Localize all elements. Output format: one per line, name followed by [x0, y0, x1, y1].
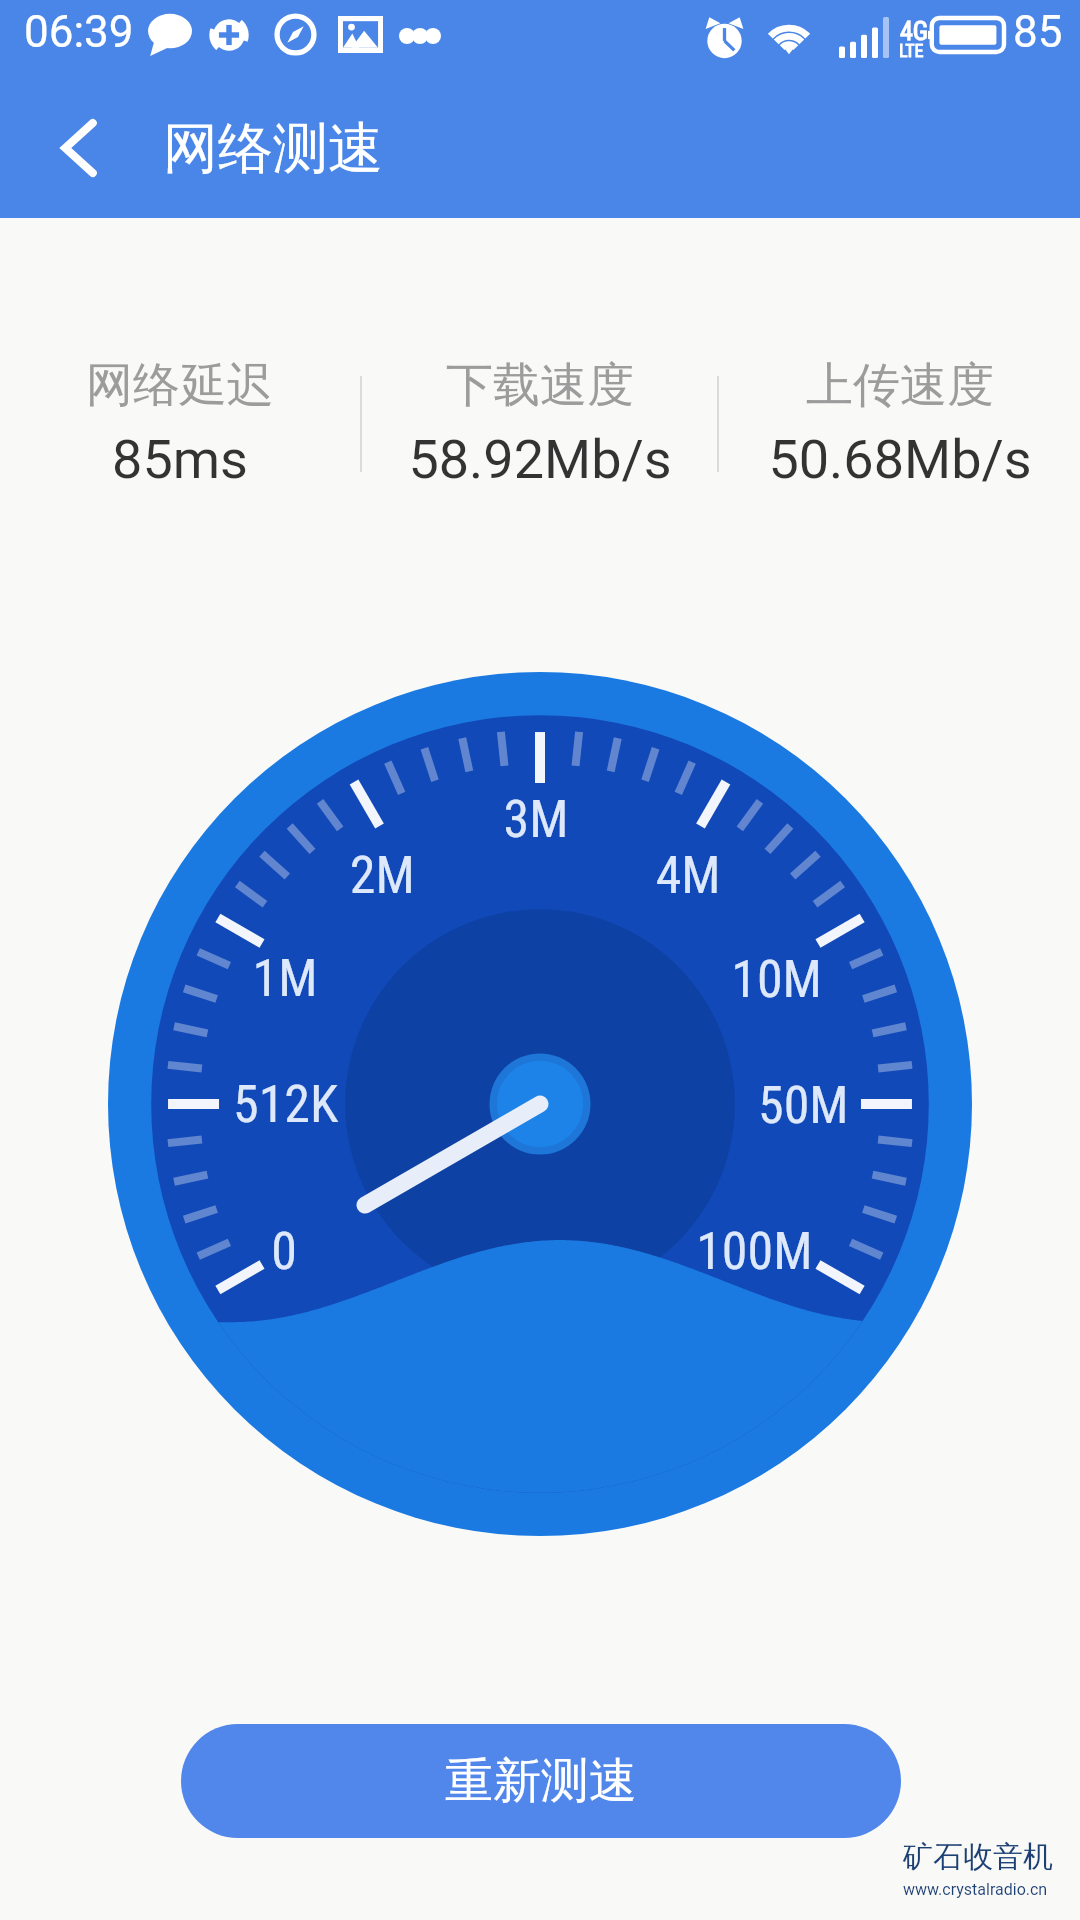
staticText: 06:39: [24, 6, 134, 58]
button[interactable]: 重新测速: [181, 1724, 901, 1838]
staticText: 58.92Mb/s: [360, 428, 720, 491]
staticText: 4G: [900, 16, 929, 46]
staticText: 矿石收音机: [903, 1838, 1053, 1876]
staticText: 下载速度: [360, 356, 720, 415]
staticText: 上传速度: [720, 356, 1080, 415]
staticText: 重新测速: [445, 1751, 637, 1811]
staticText: 网络测速: [163, 114, 383, 183]
staticText: 50.68Mb/s: [720, 428, 1080, 491]
staticText: 85ms: [0, 428, 360, 491]
staticText: 85: [1013, 6, 1063, 58]
staticText: 网络延迟: [0, 356, 360, 415]
staticText: LTE: [899, 40, 924, 61]
staticText: www.crystalradio.cn: [903, 1880, 1048, 1899]
button[interactable]: Back: [0, 78, 160, 218]
